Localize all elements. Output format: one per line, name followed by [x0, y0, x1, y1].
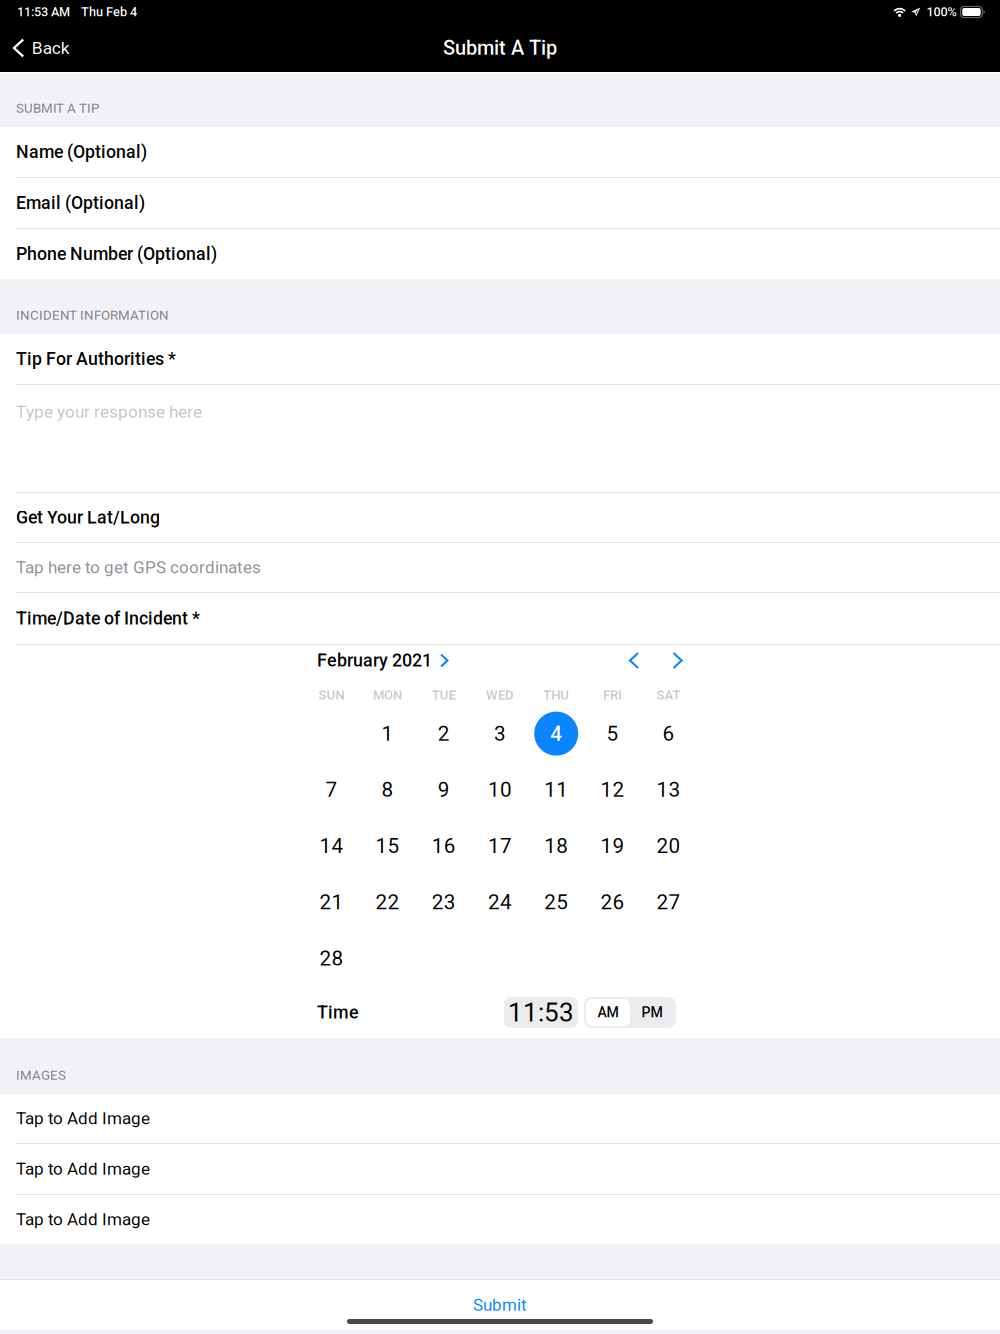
staticText: FRI — [603, 687, 622, 703]
button[interactable]: Tap to Add Image — [0, 1195, 1000, 1244]
staticText: INCIDENT INFORMATION — [16, 307, 169, 323]
staticText: 2 — [438, 721, 450, 746]
staticText: SAT — [657, 687, 681, 703]
staticText: SUBMIT A TIP — [16, 100, 99, 116]
staticText: SUN — [318, 687, 344, 703]
button[interactable]: 25 — [528, 874, 584, 930]
staticText: 28 — [319, 946, 343, 970]
staticText: Tap here to get GPS coordinates — [16, 557, 261, 577]
staticText: 15 — [376, 834, 400, 858]
button[interactable]: 24 — [472, 874, 528, 930]
button[interactable]: 14 — [303, 818, 359, 874]
button[interactable]: Back — [0, 24, 82, 72]
button[interactable]: 22 — [359, 874, 416, 930]
staticText: Submit — [473, 1295, 527, 1315]
staticText: WED — [486, 687, 514, 703]
staticText: Email (Optional) — [16, 193, 145, 213]
button[interactable]: 18 — [528, 818, 584, 874]
button[interactable]: 5 — [584, 705, 640, 762]
staticText: Thu Feb 4 — [81, 5, 137, 19]
button[interactable]: Get Your Lat/Long — [0, 493, 1000, 542]
button[interactable]: 26 — [584, 874, 640, 930]
button[interactable]: Tap here to get GPS coordinates — [0, 543, 1000, 592]
button[interactable]: 2 — [416, 705, 472, 762]
staticText: Submit A Tip — [443, 36, 557, 60]
staticText: 23 — [432, 890, 456, 914]
button[interactable]: February 2021 — [317, 644, 448, 677]
staticText: 10 — [488, 778, 512, 802]
staticText: 20 — [657, 834, 681, 858]
staticText: Get Your Lat/Long — [16, 507, 160, 528]
button[interactable]: 9 — [416, 762, 472, 818]
button[interactable]: 15 — [359, 818, 416, 874]
button[interactable]: 19 — [584, 818, 640, 874]
staticText: 22 — [376, 890, 400, 914]
button[interactable]: 6 — [640, 705, 697, 762]
button[interactable]: AM — [586, 999, 630, 1026]
staticText: Back — [32, 38, 70, 58]
button[interactable]: 12 — [584, 762, 640, 818]
staticText: IMAGES — [16, 1067, 66, 1083]
staticText: 4 — [550, 721, 562, 746]
button[interactable]: 20 — [640, 818, 697, 874]
staticText: Time/Date of Incident * — [16, 608, 200, 629]
staticText: 11:53 AM — [17, 5, 70, 19]
staticText: Phone Number (Optional) — [16, 244, 217, 264]
button[interactable]: 8 — [359, 762, 416, 818]
staticText: 14 — [319, 834, 343, 858]
button[interactable]: 7 — [303, 762, 359, 818]
staticText: 6 — [663, 721, 675, 746]
button[interactable]: 17 — [472, 818, 528, 874]
staticText: 3 — [494, 721, 506, 746]
staticText: TUE — [432, 687, 456, 703]
button[interactable]: 13 — [640, 762, 697, 818]
staticText: 17 — [488, 834, 512, 858]
button[interactable]: Tap to Add Image — [0, 1094, 1000, 1143]
button[interactable]: 10 — [472, 762, 528, 818]
staticText: Time — [317, 1002, 359, 1023]
button[interactable]: Time/Date of Incident * — [0, 593, 1000, 644]
button[interactable]: 4 — [528, 705, 584, 762]
staticText: 8 — [382, 778, 394, 802]
button[interactable]: 27 — [640, 874, 697, 930]
button[interactable]: PM — [630, 999, 674, 1026]
staticText: 21 — [319, 890, 343, 914]
button[interactable]: Phone Number (Optional) — [0, 229, 1000, 279]
button[interactable]: 28 — [303, 930, 359, 986]
staticText: 16 — [432, 834, 456, 858]
staticText: Tap to Add Image — [16, 1108, 150, 1128]
staticText: 11:53 — [508, 997, 574, 1028]
staticText: 9 — [438, 778, 450, 802]
button[interactable]: Email (Optional) — [0, 178, 1000, 228]
staticText: PM — [641, 1004, 662, 1021]
staticText: 24 — [488, 890, 512, 914]
staticText: 26 — [600, 890, 624, 914]
staticText: Type your response here — [16, 402, 202, 422]
staticText: 1 — [382, 721, 394, 746]
button[interactable]: Tap to Add Image — [0, 1144, 1000, 1194]
button[interactable]: 3 — [472, 705, 528, 762]
staticText: 12 — [600, 778, 624, 802]
button[interactable]: 21 — [303, 874, 359, 930]
button[interactable]: Name (Optional) — [0, 127, 1000, 177]
button[interactable]: 1 — [359, 705, 416, 762]
button[interactable]: Type your response here — [0, 385, 1000, 492]
staticText: 5 — [606, 721, 618, 746]
button[interactable]: 23 — [416, 874, 472, 930]
button[interactable]: Tip For Authorities * — [0, 334, 1000, 384]
button[interactable]: Next month — [658, 644, 696, 677]
staticText: Tap to Add Image — [16, 1159, 150, 1179]
button[interactable]: Submit — [0, 1280, 1000, 1330]
staticText: 19 — [600, 834, 624, 858]
button[interactable]: 11 — [528, 762, 584, 818]
staticText: 25 — [544, 890, 568, 914]
button[interactable]: 16 — [416, 818, 472, 874]
button[interactable]: Previous month — [615, 644, 652, 677]
